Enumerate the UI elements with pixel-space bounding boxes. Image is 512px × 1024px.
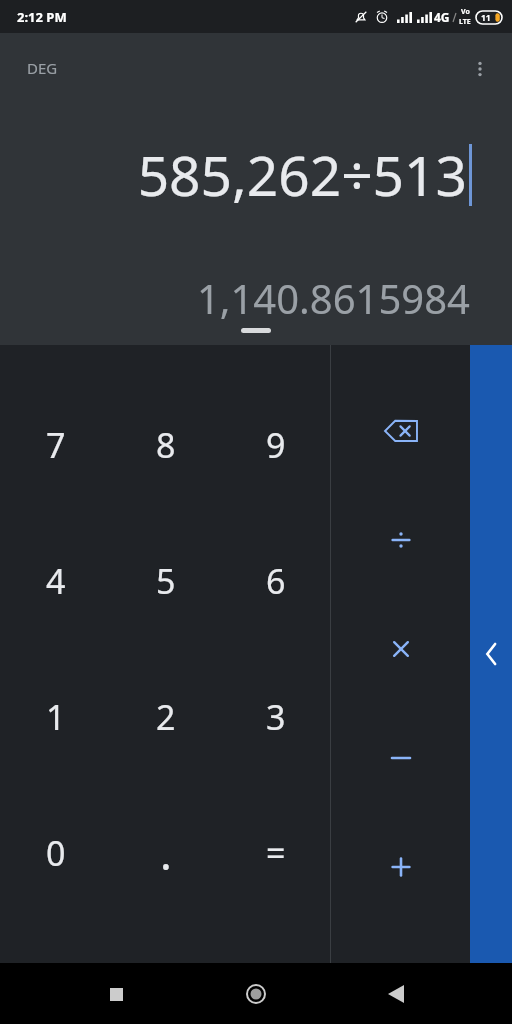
staticText: 4G — [434, 9, 450, 25]
button[interactable]: 3 — [221, 649, 331, 785]
staticText: 4 — [46, 558, 66, 604]
other: Minus — [381, 738, 421, 778]
staticText: 5 — [156, 558, 176, 604]
button[interactable]: 8 — [111, 377, 221, 513]
other: Plus — [381, 847, 421, 887]
button[interactable]: 4 — [0, 513, 111, 649]
button[interactable]: 7 — [0, 377, 111, 513]
button[interactable]: Home — [232, 970, 280, 1018]
staticText: 6 — [266, 558, 286, 604]
staticText: Vo — [461, 7, 470, 17]
button[interactable]: . — [111, 785, 221, 921]
button[interactable]: Open advanced pad — [470, 345, 512, 963]
other: Backspace — [381, 411, 421, 451]
button[interactable]: Minus — [331, 703, 470, 812]
button[interactable]: Recent apps — [92, 970, 140, 1018]
button[interactable]: DEG — [27, 58, 58, 78]
other: Divide — [381, 520, 421, 560]
staticText: 2:12 PM — [17, 8, 67, 26]
button[interactable]: 2 — [111, 649, 221, 785]
staticText: 7 — [46, 422, 66, 468]
button[interactable]: 1 — [0, 649, 111, 785]
staticText: 1 — [46, 694, 66, 740]
staticText: 2 — [156, 694, 176, 740]
button[interactable]: = — [221, 785, 331, 921]
staticText: 9 — [266, 422, 286, 468]
staticText: . — [160, 823, 172, 883]
button[interactable]: 5 — [111, 513, 221, 649]
button[interactable]: Expand history — [241, 328, 271, 333]
staticText: 8 — [156, 422, 176, 468]
staticText: 3 — [266, 694, 286, 740]
staticText: 1,140.8615984 — [196, 271, 470, 325]
button[interactable]: Multiply — [331, 594, 470, 703]
button[interactable]: Plus — [331, 812, 470, 921]
staticText: = — [266, 830, 286, 876]
button[interactable]: More options — [462, 51, 498, 87]
staticText: 0 — [46, 830, 66, 876]
other: Multiply — [381, 629, 421, 669]
staticText: LTE — [459, 17, 471, 27]
button[interactable]: Divide — [331, 485, 470, 594]
staticText: 585,262÷513 — [137, 137, 467, 212]
staticText: 11 — [481, 12, 491, 24]
button[interactable]: 6 — [221, 513, 331, 649]
button[interactable]: 0 — [0, 785, 111, 921]
button[interactable]: Back — [372, 970, 420, 1018]
button[interactable]: Backspace — [331, 377, 470, 485]
button[interactable]: 9 — [221, 377, 331, 513]
